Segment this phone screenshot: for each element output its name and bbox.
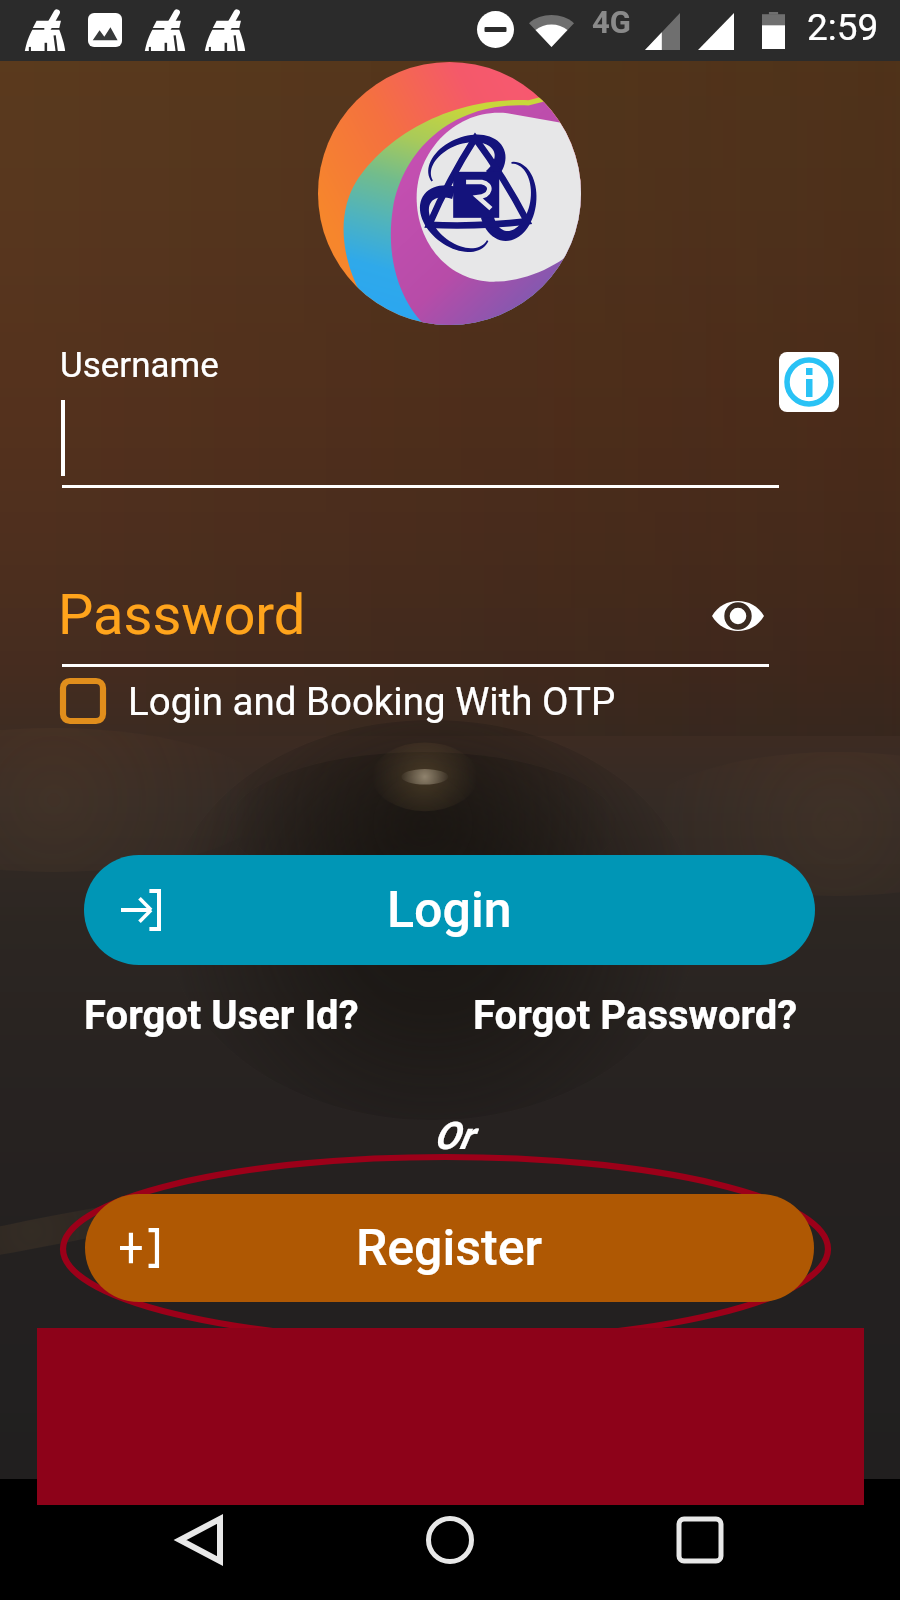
- staticText: Forgot Password?: [473, 992, 798, 1039]
- staticText: Register: [356, 1219, 543, 1278]
- button[interactable]: Recent apps: [660, 1500, 740, 1580]
- staticText: 2:59: [807, 6, 879, 49]
- staticText: Username: [60, 345, 219, 386]
- staticText: Password: [58, 582, 306, 648]
- button[interactable]: Home: [410, 1500, 490, 1580]
- button[interactable]: Information: [779, 352, 839, 412]
- button[interactable]: Login and Booking With OTP: [57, 671, 616, 731]
- staticText: 4G: [592, 4, 631, 40]
- button[interactable]: Register: [85, 1194, 814, 1302]
- staticText: Forgot User Id?: [84, 992, 359, 1039]
- button[interactable]: Show password: [705, 588, 771, 644]
- button[interactable]: Back: [160, 1500, 240, 1580]
- button[interactable]: Forgot User Id?: [84, 992, 359, 1039]
- button[interactable]: Login: [84, 855, 815, 965]
- button[interactable]: Forgot Password?: [473, 992, 798, 1039]
- staticText: Or: [434, 1114, 473, 1159]
- staticText: Login and Booking With OTP: [128, 679, 616, 724]
- staticText: Login: [387, 881, 512, 940]
